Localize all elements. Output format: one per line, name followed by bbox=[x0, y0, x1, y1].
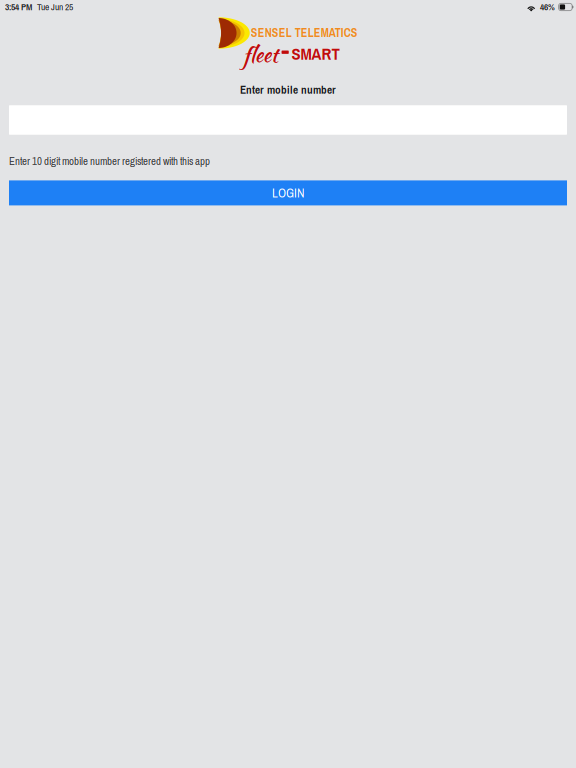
staticText: Tue Jun 25 bbox=[37, 1, 73, 13]
staticText: 3:54 PM bbox=[5, 1, 32, 13]
button[interactable]: LOGIN bbox=[9, 180, 567, 205]
staticText: 46% bbox=[540, 1, 555, 13]
staticText: Enter 10 digit mobile number registered … bbox=[9, 154, 210, 168]
staticText: SMART bbox=[292, 42, 340, 65]
staticText: SENSEL TELEMATICS bbox=[251, 25, 358, 41]
staticText: LOGIN bbox=[272, 184, 304, 201]
staticText: Enter mobile number bbox=[240, 82, 336, 97]
staticText: fleet bbox=[243, 40, 278, 70]
